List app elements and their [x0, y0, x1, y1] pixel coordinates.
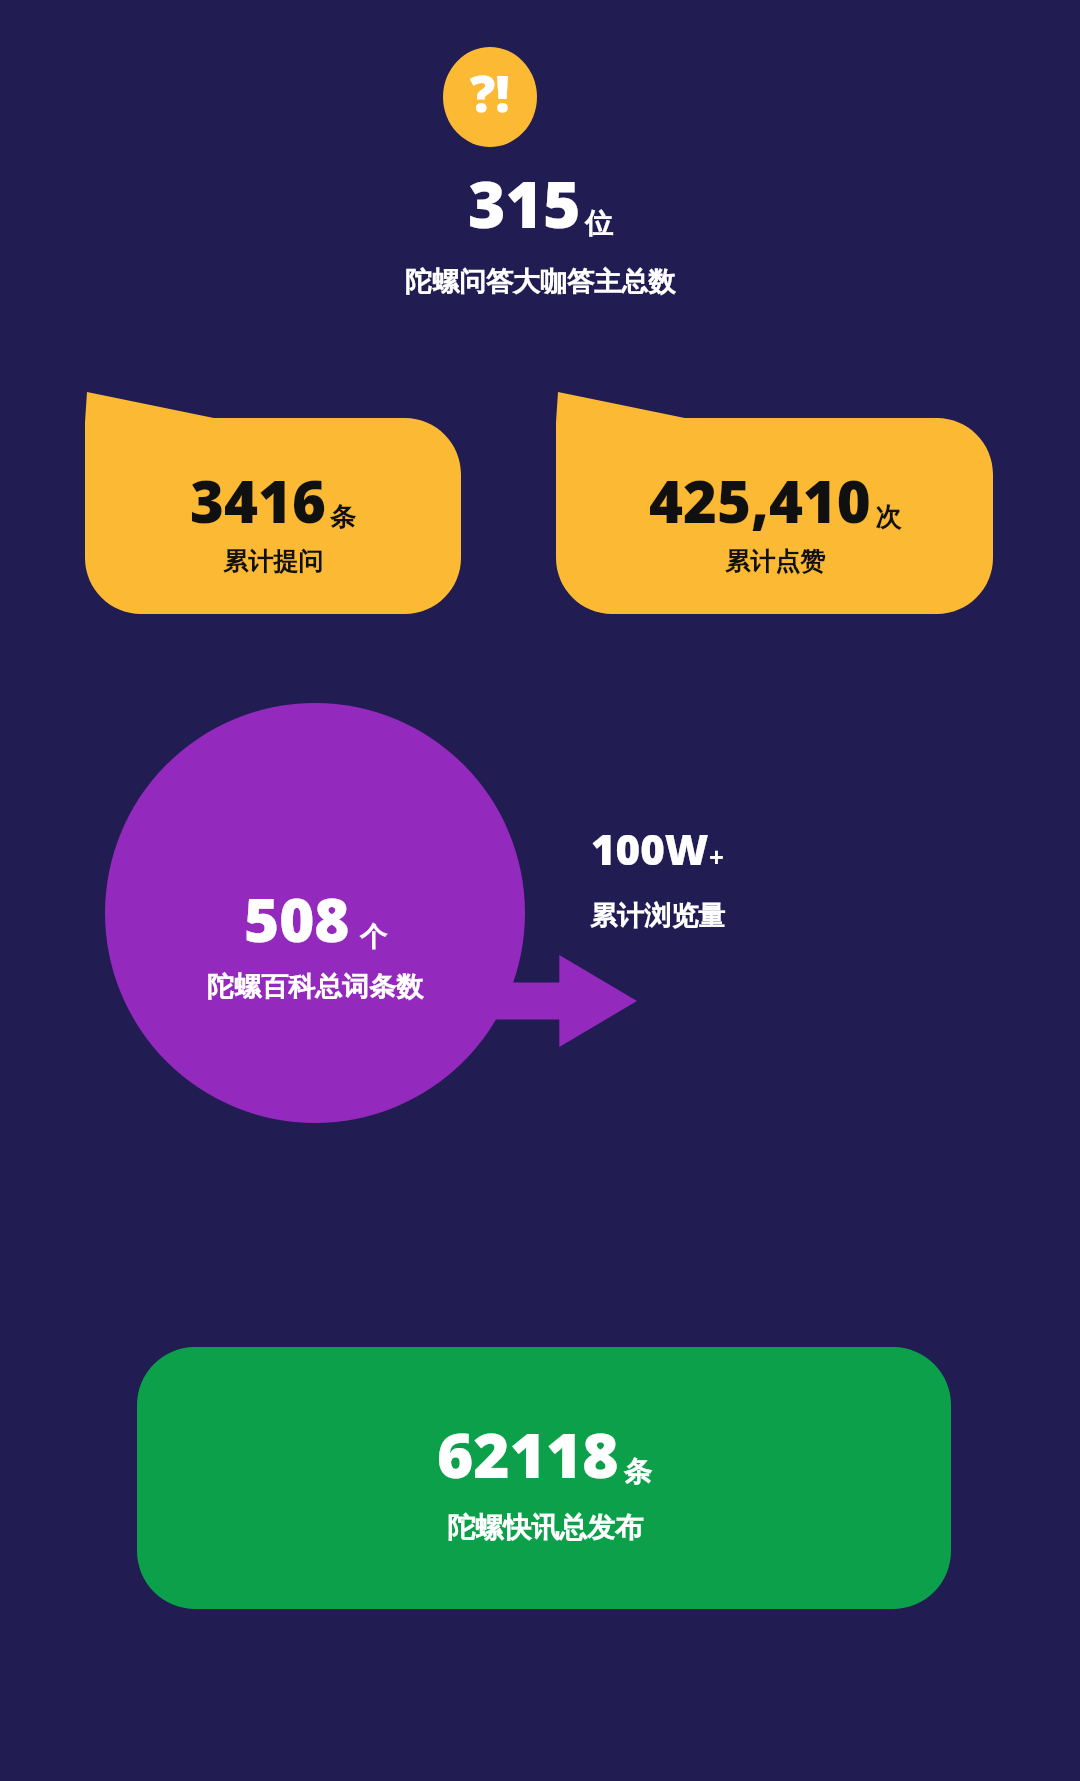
staticText: 条: [330, 501, 356, 534]
staticText: 陀螺快讯总发布: [447, 1510, 643, 1545]
staticText: 陀螺问答大咖答主总数: [405, 265, 675, 299]
staticText: 累计浏览量: [590, 899, 725, 933]
staticText: 累计点赞: [725, 546, 825, 577]
staticText: ?!: [470, 59, 510, 127]
staticText: 3416: [190, 461, 326, 540]
button[interactable]: 3416 questions asked: [85, 392, 461, 614]
staticText: 100W: [591, 820, 709, 877]
staticText: +: [709, 839, 724, 874]
staticText: 位: [585, 206, 613, 241]
staticText: 个: [360, 920, 387, 954]
button[interactable]: 508 encyclopedia entries: [105, 703, 525, 1123]
button[interactable]: 62118: [137, 1347, 951, 1609]
staticText: 315: [468, 160, 581, 247]
staticText: 陀螺百科总词条数: [207, 970, 423, 1004]
staticText: 508: [244, 878, 350, 960]
button[interactable]: 425410 likes: [556, 392, 993, 614]
button[interactable]: Questions and answers: [443, 47, 537, 147]
staticText: 425,410: [649, 461, 871, 540]
staticText: 累计提问: [223, 546, 323, 577]
staticText: 条: [624, 1454, 652, 1489]
staticText: 62118: [437, 1412, 619, 1496]
staticText: 次: [875, 501, 901, 534]
button[interactable]: 100W: [590, 820, 725, 933]
